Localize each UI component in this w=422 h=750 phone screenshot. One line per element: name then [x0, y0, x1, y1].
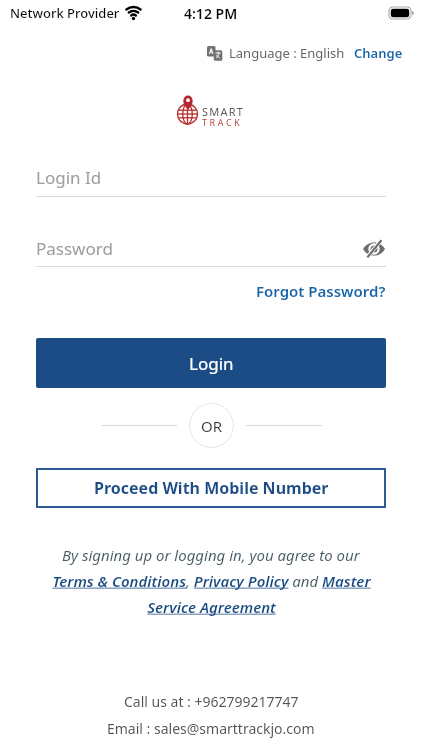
button[interactable]: Service Agreement — [147, 597, 276, 617]
staticText: Password — [36, 237, 113, 260]
staticText: Login Id — [36, 166, 102, 189]
staticText: TRACK — [202, 116, 243, 128]
staticText: Network Provider — [10, 4, 120, 22]
button[interactable]: Login — [36, 338, 386, 388]
staticText: Language : English — [229, 44, 345, 62]
staticText: Proceed With Mobile Number — [94, 477, 329, 499]
staticText: OR — [201, 416, 223, 436]
button[interactable]: Forgot Password? — [256, 281, 386, 301]
staticText: Login — [189, 352, 234, 375]
button[interactable]: Proceed With Mobile Number — [36, 468, 386, 508]
staticText: Call us at : +962799217747 — [124, 692, 299, 711]
button[interactable]: Terms & Conditions, Privacy Policy and M… — [52, 571, 371, 591]
staticText: SMART — [202, 104, 245, 119]
staticText: Forgot Password? — [256, 281, 386, 301]
staticText: Change — [354, 44, 403, 62]
button[interactable]: Change — [354, 44, 403, 62]
button[interactable] — [362, 238, 386, 260]
staticText: 4:12 PM — [184, 4, 238, 23]
staticText: Email : sales@smarttrackjo.com — [107, 719, 315, 738]
staticText: By signing up or logging in, you agree t… — [62, 545, 360, 565]
